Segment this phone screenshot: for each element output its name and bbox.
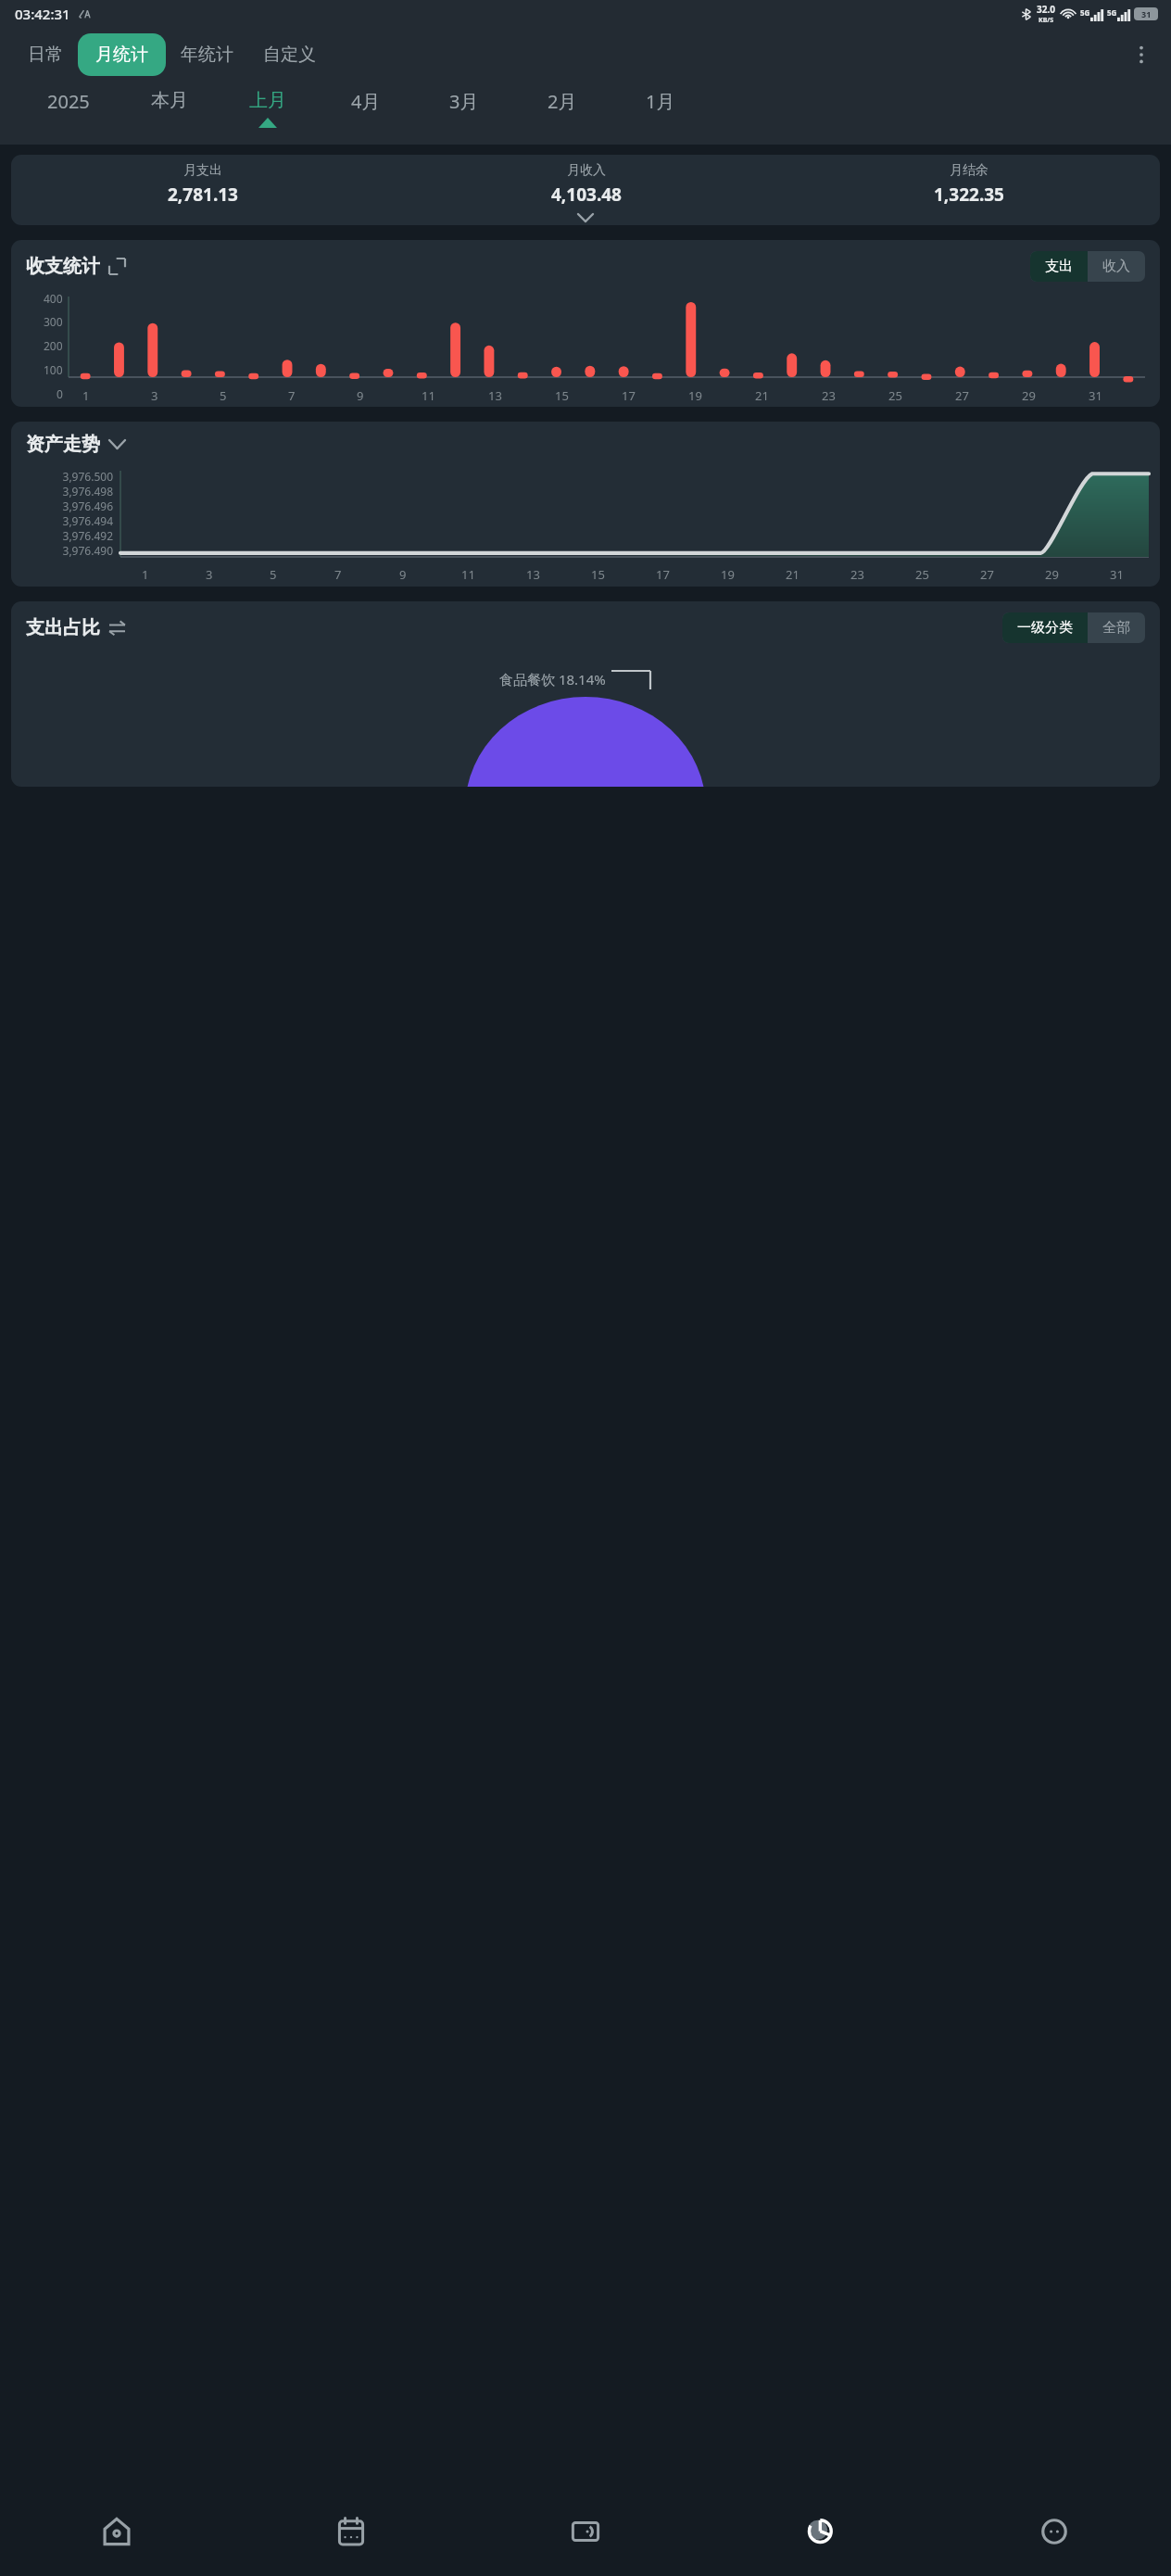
staticText: 19 — [721, 566, 735, 583]
staticText: 31 — [1141, 8, 1152, 19]
staticText: 1 — [142, 566, 149, 583]
staticText: 全部 — [1102, 619, 1130, 637]
staticText: 03:42:31 — [15, 5, 70, 23]
staticText: 支出占比 — [26, 616, 100, 639]
staticText: 21 — [755, 387, 769, 404]
button[interactable]: 全部 — [1088, 612, 1145, 643]
staticText: 3,976.490 — [13, 543, 113, 557]
staticText: 0 — [57, 386, 63, 399]
staticText: 月收入 — [567, 162, 606, 179]
staticText: 27 — [980, 566, 994, 583]
staticText: 7 — [334, 566, 342, 583]
button[interactable]: 资产走势 — [26, 433, 125, 456]
staticText: 9 — [357, 387, 364, 404]
staticText: 3,976.500 — [13, 469, 113, 484]
button[interactable]: 一级分类 — [1002, 612, 1088, 643]
staticText: 3月 — [449, 89, 479, 114]
staticText: 13 — [526, 566, 540, 583]
staticText: 月结余 — [950, 162, 988, 179]
staticText: 400 — [44, 291, 63, 306]
staticText: 200 — [44, 338, 63, 353]
staticText: 11 — [461, 566, 475, 583]
staticText: 15 — [555, 387, 569, 404]
staticText: 2,781.13 — [168, 183, 238, 207]
staticText: 食品餐饮 18.14% — [499, 670, 606, 688]
staticText: 本月 — [151, 89, 188, 112]
staticText: 29 — [1022, 387, 1036, 404]
staticText: 4,103.48 — [551, 183, 622, 207]
staticText: 23 — [850, 566, 864, 583]
button[interactable]: Calendar — [233, 2494, 468, 2576]
staticText: 15 — [591, 566, 605, 583]
button[interactable]: 收入 — [1088, 251, 1145, 282]
button[interactable]: 自定义 — [248, 35, 331, 74]
button[interactable]: 2025 — [17, 82, 120, 135]
staticText: 3,976.494 — [13, 513, 113, 528]
staticText: 支出 — [1045, 258, 1073, 275]
staticText: 27 — [955, 387, 969, 404]
staticText: 自定义 — [263, 44, 316, 66]
button[interactable]: More — [937, 2494, 1171, 2576]
button[interactable]: Home — [0, 2494, 233, 2576]
button[interactable]: Statistics — [702, 2494, 937, 2576]
staticText: 5G — [1080, 7, 1090, 18]
staticText: 1 — [82, 387, 90, 404]
button[interactable]: 年统计 — [166, 35, 248, 74]
button[interactable]: 月支出 — [11, 155, 1160, 225]
staticText: 19 — [688, 387, 702, 404]
button[interactable]: 本月 — [120, 82, 219, 135]
staticText: 5 — [220, 387, 227, 404]
staticText: 一级分类 — [1017, 619, 1073, 637]
button[interactable]: 月统计 — [78, 33, 166, 76]
staticText: 23 — [822, 387, 836, 404]
staticText: 1,322.35 — [934, 183, 1004, 207]
staticText: 3,976.498 — [13, 484, 113, 499]
staticText: 11 — [422, 387, 435, 404]
staticText: 上月 — [249, 89, 286, 112]
staticText: 月统计 — [95, 44, 148, 66]
staticText: 17 — [622, 387, 636, 404]
button[interactable]: 支出 — [1030, 251, 1088, 282]
staticText: 25 — [915, 566, 929, 583]
staticText: 29 — [1045, 566, 1059, 583]
staticText: 5 — [270, 566, 277, 583]
button[interactable]: More options — [1121, 34, 1162, 75]
staticText: 5G — [1107, 7, 1117, 18]
button[interactable]: 上月 — [219, 82, 317, 135]
button[interactable]: 3月 — [415, 82, 513, 135]
staticText: 1月 — [646, 89, 675, 114]
staticText: 日常 — [28, 44, 63, 66]
button[interactable]: 1月 — [611, 82, 710, 135]
staticText: 资产走势 — [26, 433, 100, 456]
button[interactable]: 日常 — [13, 35, 78, 74]
staticText: 2月 — [548, 89, 577, 114]
staticText: 收支统计 — [26, 255, 100, 278]
staticText: 7 — [288, 387, 296, 404]
button[interactable]: 支出占比 — [26, 616, 125, 639]
staticText: 收入 — [1102, 258, 1130, 275]
staticText: 13 — [488, 387, 502, 404]
staticText: 2025 — [47, 89, 90, 114]
staticText: 年统计 — [181, 44, 233, 66]
button[interactable]: Wallet — [468, 2494, 702, 2576]
staticText: 月支出 — [183, 162, 222, 179]
staticText: 25 — [888, 387, 902, 404]
staticText: 3 — [206, 566, 213, 583]
staticText: 4月 — [351, 89, 381, 114]
button[interactable]: 4月 — [317, 82, 415, 135]
staticText: 100 — [44, 362, 63, 377]
staticText: 17 — [656, 566, 670, 583]
staticText: 32.0 — [1037, 3, 1055, 16]
staticText: 300 — [44, 314, 63, 329]
staticText: 31 — [1089, 387, 1102, 404]
staticText: 3 — [151, 387, 158, 404]
staticText: 31 — [1110, 566, 1124, 583]
staticText: 3,976.492 — [13, 528, 113, 543]
staticText: 3,976.496 — [13, 499, 113, 513]
button[interactable]: 收支统计 — [26, 255, 125, 278]
staticText: 9 — [399, 566, 407, 583]
staticText: KB/S — [1039, 16, 1054, 25]
staticText: 21 — [786, 566, 800, 583]
button[interactable]: 2月 — [513, 82, 611, 135]
